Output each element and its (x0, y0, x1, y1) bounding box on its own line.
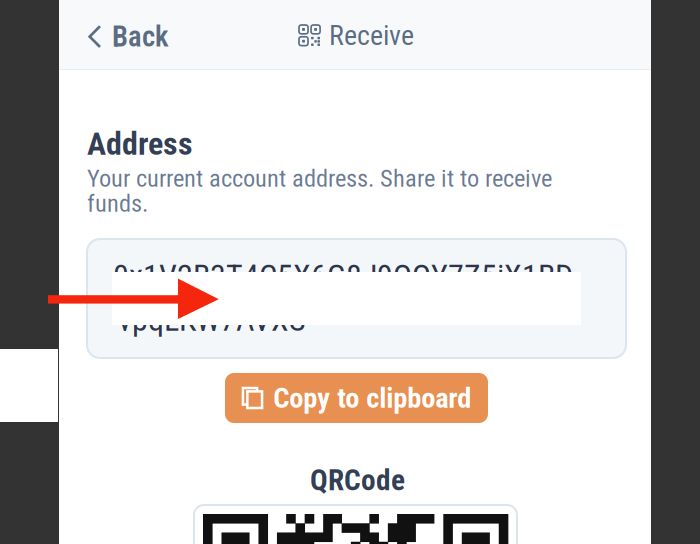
button[interactable]: Copy to clipboard (225, 373, 488, 423)
button[interactable]: Back (79, 7, 177, 67)
staticText: Back (112, 20, 169, 54)
staticText: Copy to clipboard (273, 381, 471, 415)
staticText: vpqLKW7AVXS (118, 301, 306, 338)
staticText: funds. (87, 189, 148, 218)
staticText: Address (87, 125, 193, 162)
staticText: Your current account address. Share it t… (87, 164, 552, 193)
staticText: QRCode (310, 463, 405, 497)
staticText: 0x1V2B3T4C5X6G8J9QQY7Z5iX1BD (113, 257, 573, 294)
staticText: Receive (329, 19, 414, 52)
